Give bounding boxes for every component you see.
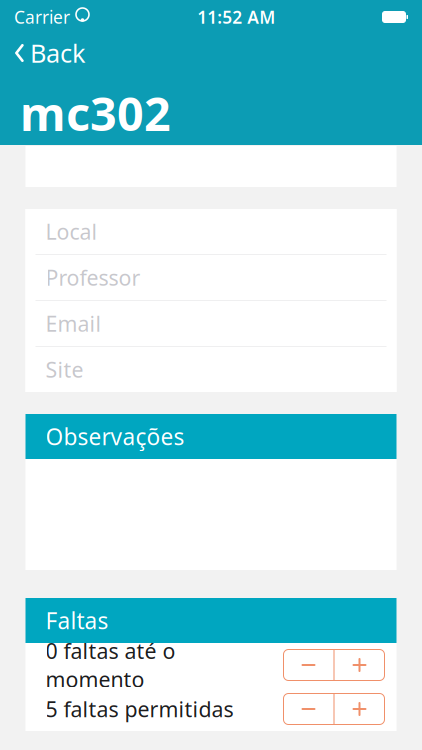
button[interactable]: Back — [0, 36, 86, 70]
staticText: Faltas — [45, 605, 108, 635]
staticText: Professor — [45, 263, 140, 292]
staticText: Observações — [45, 421, 184, 451]
staticText: Carrier — [14, 5, 70, 28]
staticText: 0 faltas até o momento — [45, 637, 175, 693]
staticText: 11:52 AM — [197, 5, 275, 28]
staticText: mc302 — [20, 82, 171, 144]
staticText: 5 faltas permitidas — [45, 695, 233, 723]
staticText: Back — [30, 36, 86, 70]
button[interactable]: Decrease — [283, 649, 333, 680]
staticText: Email — [45, 309, 101, 338]
button[interactable]: Increase — [334, 649, 384, 680]
button[interactable]: Increase — [334, 693, 384, 724]
staticText: Site — [45, 355, 83, 384]
button[interactable]: Decrease — [283, 693, 333, 724]
staticText: Local — [45, 217, 97, 246]
